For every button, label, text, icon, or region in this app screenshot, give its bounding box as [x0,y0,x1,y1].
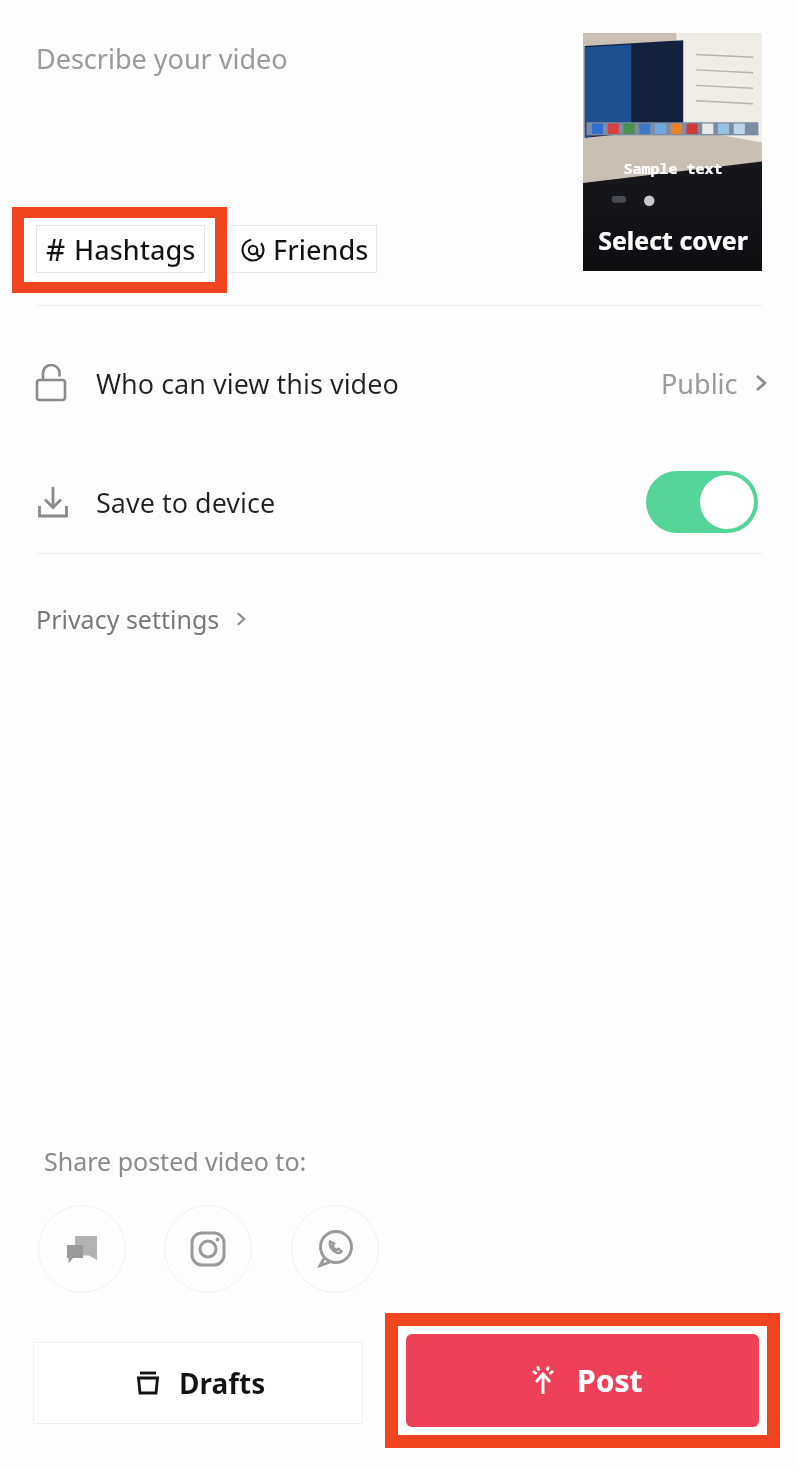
staticText: Hashtags [74,231,196,268]
button[interactable]: Save to device [0,464,798,540]
staticText: Who can view this video [96,365,399,402]
button[interactable]: Select cover [583,33,762,271]
staticText: Sample text [623,158,723,178]
button[interactable]: Share to Instagram [164,1205,252,1293]
staticText: Drafts [179,1364,266,1402]
staticText: Privacy settings [36,602,220,636]
staticText: Select cover [598,223,748,257]
button[interactable]: Friends [230,225,377,273]
staticText: Public [661,365,738,402]
button[interactable]: Share to Messages [38,1205,126,1293]
button[interactable]: # [36,225,205,273]
button[interactable]: Post [406,1334,759,1427]
staticText: Save to device [96,484,276,521]
button[interactable]: Save to device toggle [646,471,758,533]
staticText: Post [577,1360,643,1401]
staticText: Friends [273,231,369,268]
staticText: Share posted video to: [44,1144,307,1178]
button[interactable]: Who can view this video [0,345,798,421]
button[interactable]: Share to WhatsApp [291,1205,379,1293]
button[interactable]: Drafts [33,1342,363,1424]
staticText: Describe your video [36,40,288,77]
staticText: # [46,229,66,270]
button[interactable]: Privacy settings [30,594,258,644]
